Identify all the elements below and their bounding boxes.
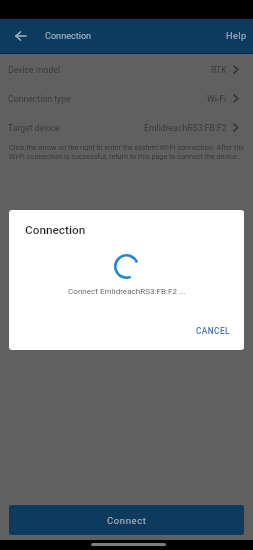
button[interactable]: Connect: [9, 505, 244, 535]
staticText: CANCEL: [196, 326, 231, 336]
button[interactable]: CANCEL: [190, 323, 237, 339]
staticText: Wi-Fi: [207, 94, 227, 104]
button[interactable]: Help: [219, 25, 253, 48]
staticText: Help: [226, 31, 247, 42]
staticText: Connection type: [8, 94, 71, 104]
staticText: Connection: [25, 223, 86, 237]
staticText: Target device: [8, 123, 60, 133]
button[interactable]: Device model: [0, 55, 253, 84]
staticText: Connection: [45, 31, 92, 42]
button[interactable]: Target device: [0, 113, 253, 142]
staticText: RTK: [211, 65, 227, 75]
staticText: EmlidreachRS3:FB:F2: [144, 123, 227, 133]
staticText: Device model: [8, 65, 61, 75]
staticText: Connect EmlidreachRS3:FB:F2 ...: [68, 286, 186, 295]
button[interactable]: Connection type: [0, 84, 253, 113]
staticText: Click the arrow on the right to enter th…: [9, 143, 249, 161]
staticText: Connect: [107, 515, 147, 526]
button[interactable]: Back: [13, 27, 31, 45]
